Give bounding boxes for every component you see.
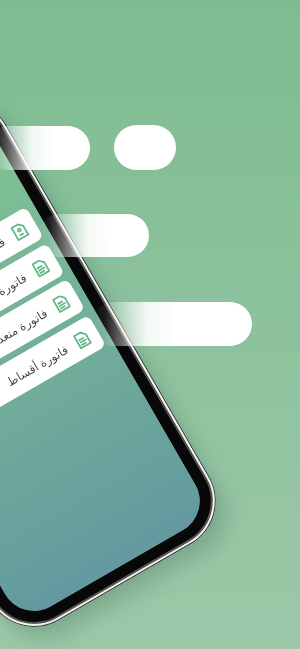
button[interactable]: فاتورة مبسطة: [0, 206, 44, 333]
staticText: فاتورة متعددة: [0, 304, 50, 352]
button[interactable]: فاتورة أقساط: [0, 315, 106, 441]
staticText: فاتورة أقساط: [3, 341, 71, 389]
staticText: فاتورة تفصيلية: [0, 269, 30, 319]
button[interactable]: فاتورة متعددة: [0, 278, 85, 405]
staticText: فاتورة مبسطة: [0, 233, 9, 282]
button[interactable]: فاتورة تفصيلية: [0, 243, 65, 369]
